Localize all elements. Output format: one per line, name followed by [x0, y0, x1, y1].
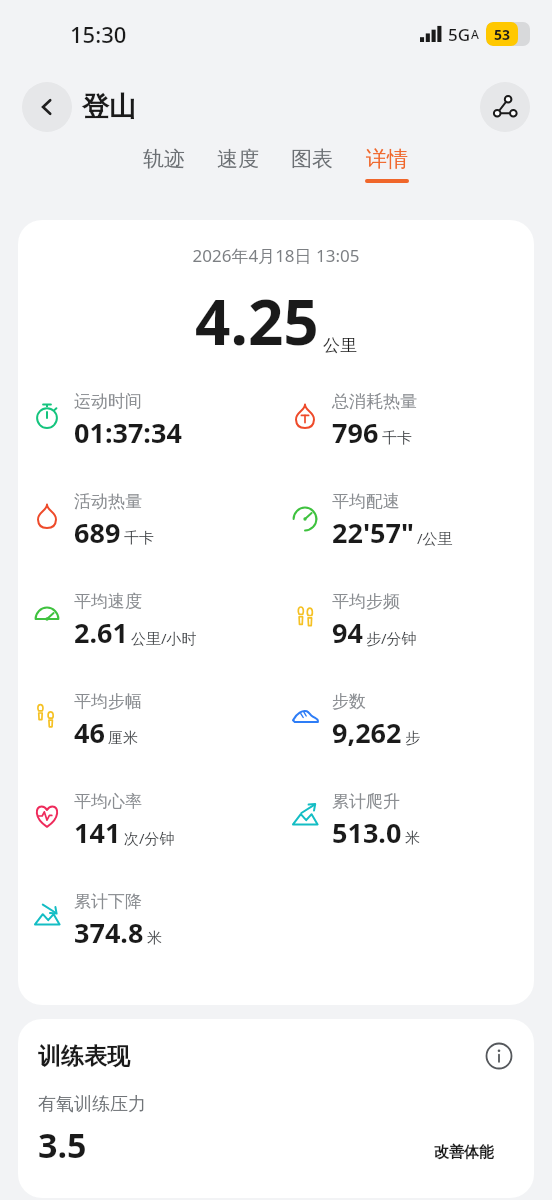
staticText: 平均配速	[332, 491, 400, 512]
staticText: 689	[74, 514, 121, 551]
button[interactable]: 累计下降	[18, 885, 276, 985]
button[interactable]: 速度	[217, 146, 259, 179]
staticText: 米	[147, 929, 162, 948]
button[interactable]: 运动时间	[18, 385, 276, 485]
staticText: 速度	[217, 146, 259, 172]
staticText: 平均心率	[74, 791, 142, 812]
staticText: 2.61	[74, 614, 128, 651]
staticText: 轨迹	[143, 146, 185, 172]
staticText: 3.5	[38, 1122, 87, 1168]
staticText: 9,262	[332, 714, 402, 751]
staticText: 01:37:34	[74, 414, 182, 451]
staticText: 796	[332, 414, 379, 451]
staticText: 详情	[366, 146, 408, 172]
staticText: 374.8	[74, 914, 144, 951]
button[interactable]: 详情	[365, 146, 409, 183]
staticText: A	[471, 26, 479, 42]
button[interactable]: 步数	[276, 685, 534, 785]
staticText: 有氧训练压力	[38, 1093, 146, 1116]
staticText: /公里	[417, 528, 453, 548]
staticText: 步数	[332, 691, 366, 712]
staticText: 步	[405, 729, 420, 748]
staticText: 141	[74, 814, 121, 851]
button[interactable]: 累计爬升	[276, 785, 534, 885]
button[interactable]: 总消耗热量	[276, 385, 534, 485]
button[interactable]: Share	[480, 82, 530, 132]
button[interactable]: 平均配速	[276, 485, 534, 585]
button[interactable]: Back	[22, 82, 72, 132]
staticText: 改善体能	[434, 1143, 494, 1162]
staticText: 53	[494, 25, 511, 44]
staticText: 米	[405, 829, 420, 848]
staticText: 22'57"	[332, 514, 414, 551]
button[interactable]: Info	[484, 1041, 514, 1071]
staticText: 平均步幅	[74, 691, 142, 712]
staticText: 千卡	[124, 529, 154, 548]
staticText: 厘米	[108, 729, 138, 748]
staticText: 累计下降	[74, 891, 142, 912]
staticText: 图表	[291, 146, 333, 172]
staticText: 步/分钟	[366, 628, 417, 648]
button[interactable]: 活动热量	[18, 485, 276, 585]
staticText: 平均步频	[332, 591, 400, 612]
button[interactable]: 平均速度	[18, 585, 276, 685]
staticText: 次/分钟	[124, 828, 175, 848]
staticText: 累计爬升	[332, 791, 400, 812]
staticText: 千卡	[382, 429, 412, 448]
staticText: 513.0	[332, 814, 402, 851]
staticText: 登山	[82, 90, 136, 124]
staticText: 平均速度	[74, 591, 142, 612]
staticText: 运动时间	[74, 391, 142, 412]
staticText: 46	[74, 714, 105, 751]
staticText: 活动热量	[74, 491, 142, 512]
staticText: 公里/小时	[131, 628, 197, 648]
button[interactable]: 平均步幅	[18, 685, 276, 785]
button[interactable]: 图表	[291, 146, 333, 179]
staticText: 15:30	[70, 19, 127, 49]
button[interactable]: 平均步频	[276, 585, 534, 685]
button[interactable]: 轨迹	[143, 146, 185, 179]
staticText: 训练表现	[38, 1042, 130, 1071]
button[interactable]: 平均心率	[18, 785, 276, 885]
staticText: 4.25	[195, 279, 319, 363]
staticText: 2026年4月18日 13:05	[18, 244, 534, 267]
staticText: 总消耗热量	[332, 391, 417, 412]
staticText: 公里	[323, 335, 357, 356]
staticText: 94	[332, 614, 363, 651]
staticText: 5G	[448, 23, 471, 46]
